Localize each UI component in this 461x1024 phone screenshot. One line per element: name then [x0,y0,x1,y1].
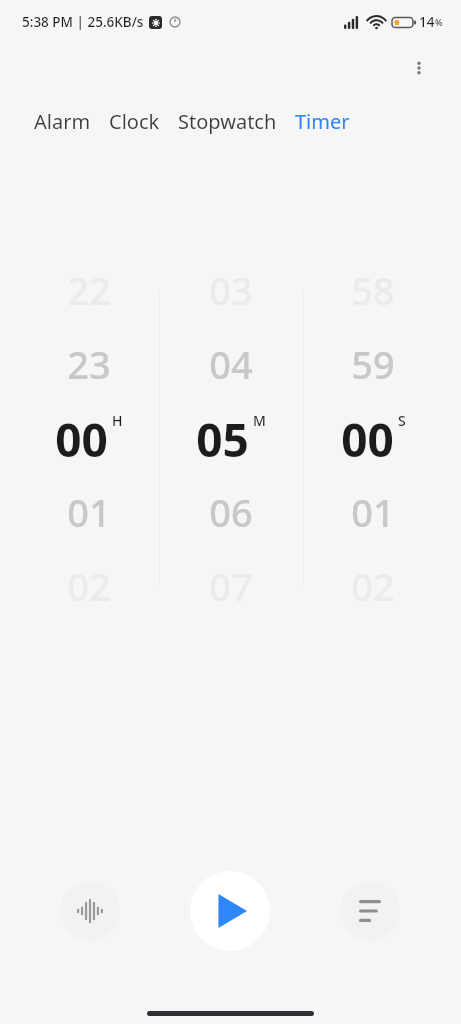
staticText: 04 [209,338,253,390]
staticText: M [253,411,266,430]
staticText: 00 [341,408,394,468]
staticText: 59 [351,338,395,390]
staticText: Stopwatch [178,108,277,135]
button[interactable]: Ringtone [60,881,120,941]
button[interactable]: Clock [103,104,166,139]
staticText: 22 [67,264,111,316]
button[interactable]: Timer [289,104,356,139]
staticText: 5:38 PM | 25.6KB/s [22,13,144,31]
staticText: Alarm [34,108,91,135]
staticText: 23 [67,338,111,390]
button[interactable] [303,255,443,625]
staticText: S [398,411,406,430]
staticText: 02 [67,560,111,612]
button[interactable]: Start timer [190,871,270,951]
button[interactable]: More options [399,48,439,88]
staticText: % [435,16,443,28]
staticText: 06 [209,486,253,538]
staticText: Clock [109,108,160,135]
staticText: Timer [295,108,350,135]
staticText: 01 [67,486,111,538]
staticText: H [112,411,123,430]
button[interactable]: Alarm [28,104,97,139]
button[interactable] [161,255,301,625]
button[interactable] [19,255,159,625]
staticText: 07 [209,560,253,612]
button[interactable]: Presets [340,881,400,941]
staticText: 14 [419,13,435,31]
staticText: 01 [351,486,395,538]
staticText: 05 [196,408,249,468]
staticText: 58 [351,264,395,316]
button[interactable]: Stopwatch [172,104,283,139]
staticText: 03 [209,264,253,316]
staticText: 00 [55,408,108,468]
staticText: 02 [351,560,395,612]
